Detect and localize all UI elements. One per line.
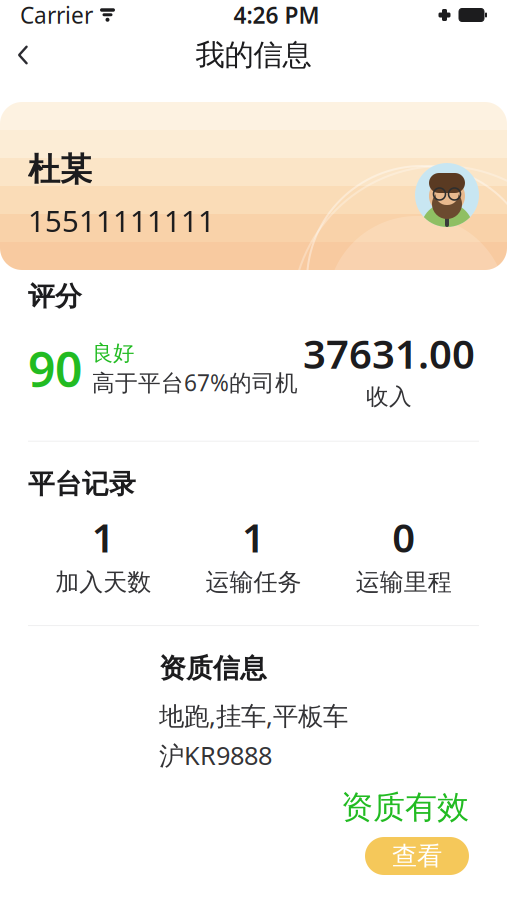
staticText: 0 <box>392 510 415 564</box>
staticText: 90 <box>28 337 82 401</box>
staticText: Carrier <box>20 0 93 30</box>
staticText: 37631.00 <box>303 327 475 380</box>
staticText: 杜某 <box>28 150 92 189</box>
staticText: 运输里程 <box>356 568 452 597</box>
staticText: 我的信息 <box>195 37 311 73</box>
staticText: 1 <box>242 510 265 564</box>
staticText: 4:26 PM <box>233 0 319 30</box>
staticText: 良好 <box>92 340 134 366</box>
staticText: 沪KR9888 <box>159 738 272 772</box>
staticText: 地跑,挂车,平板车 <box>159 699 348 732</box>
staticText: 运输任务 <box>205 568 301 597</box>
staticText: 资质有效 <box>341 788 469 827</box>
staticText: 平台记录 <box>28 468 136 500</box>
button[interactable]: 返回 <box>0 33 46 77</box>
staticText: 资质信息 <box>159 652 267 685</box>
staticText: 15511111111 <box>28 201 215 240</box>
staticText: 查看 <box>392 840 442 871</box>
staticText: 高于平台67%的司机 <box>92 367 298 397</box>
staticText: 评分 <box>28 280 82 313</box>
staticText: 加入天数 <box>55 568 151 597</box>
button[interactable]: 查看 <box>365 837 469 875</box>
staticText: 收入 <box>366 383 412 411</box>
staticText: 1 <box>92 510 115 564</box>
